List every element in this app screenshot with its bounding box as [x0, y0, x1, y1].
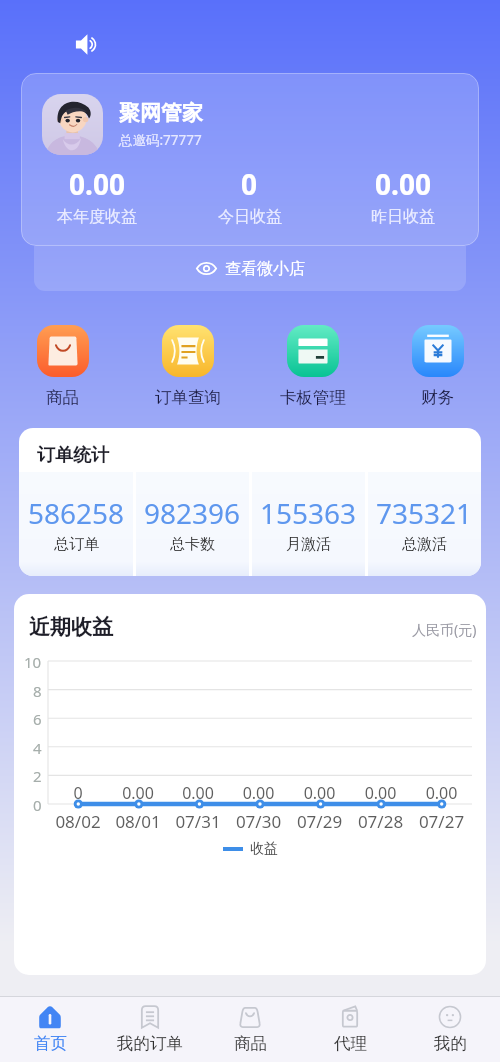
staticText: 总订单 [54, 535, 99, 554]
staticText: 0.00 [108, 782, 168, 804]
staticText: 我的 [434, 1033, 467, 1054]
button[interactable]: 商品 [0, 325, 125, 408]
staticText: 07/28 [350, 810, 411, 833]
button[interactable]: 586258 [19, 472, 133, 576]
button[interactable]: 735321 [368, 472, 481, 576]
staticText: 0.00 [289, 782, 350, 804]
button[interactable]: 我的订单 [100, 997, 200, 1062]
staticText: 0.00 [69, 165, 125, 203]
staticText: 0.00 [411, 782, 472, 804]
staticText: 07/31 [168, 810, 228, 833]
staticText: 10 [24, 652, 42, 672]
staticText: 0 [33, 795, 42, 815]
button[interactable]: Announcements [73, 31, 99, 57]
staticText: 0.00 [168, 782, 228, 804]
staticText: 总激活 [402, 535, 447, 554]
staticText: 我的订单 [117, 1033, 183, 1054]
staticText: 0.00 [228, 782, 289, 804]
staticText: 月激活 [286, 535, 331, 554]
staticText: 卡板管理 [280, 387, 346, 408]
button[interactable]: 订单查询 [125, 325, 250, 408]
staticText: 0 [241, 165, 258, 203]
staticText: 总邀码:77777 [119, 131, 202, 149]
staticText: 首页 [34, 1033, 67, 1054]
staticText: 2 [33, 766, 42, 786]
staticText: 本年度收益 [57, 207, 137, 227]
staticText: 总卡数 [170, 535, 215, 554]
button[interactable]: 代理 [300, 997, 400, 1062]
staticText: 0 [48, 782, 108, 804]
staticText: 0.00 [350, 782, 411, 804]
staticText: 735321 [376, 494, 473, 532]
staticText: 8 [33, 681, 42, 701]
staticText: 代理 [334, 1033, 367, 1054]
staticText: 08/02 [48, 810, 108, 833]
staticText: 商品 [46, 387, 79, 408]
staticText: 近期收益 [29, 614, 113, 640]
staticText: 订单查询 [155, 387, 221, 408]
button[interactable]: 155363 [252, 472, 365, 576]
staticText: 0.00 [375, 165, 431, 203]
button[interactable]: 财务 [375, 325, 500, 408]
staticText: 今日收益 [218, 207, 282, 227]
button[interactable]: 卡板管理 [250, 325, 375, 408]
button[interactable]: 商品 [200, 997, 300, 1062]
staticText: 人民币(元) [412, 620, 477, 639]
button[interactable]: 首页 [0, 997, 100, 1062]
staticText: 收益 [250, 840, 278, 858]
staticText: 6 [33, 709, 42, 729]
staticText: 查看微小店 [225, 259, 305, 279]
staticText: 聚网管家 [119, 100, 203, 126]
staticText: 586258 [28, 494, 125, 532]
staticText: 昨日收益 [371, 207, 435, 227]
staticText: 07/27 [411, 810, 472, 833]
button[interactable]: 982396 [136, 472, 249, 576]
staticText: 07/30 [228, 810, 289, 833]
staticText: 982396 [144, 494, 241, 532]
staticText: 4 [33, 738, 42, 758]
staticText: 商品 [234, 1033, 267, 1054]
staticText: 财务 [421, 387, 454, 408]
button[interactable]: 查看微小店 [34, 246, 466, 291]
button[interactable]: 我的 [400, 997, 500, 1062]
staticText: 订单统计 [37, 444, 109, 467]
staticText: 08/01 [108, 810, 168, 833]
staticText: 07/29 [289, 810, 350, 833]
staticText: 155363 [260, 494, 357, 532]
